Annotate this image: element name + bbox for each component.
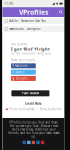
staticText: Share your results bbox=[11, 58, 35, 62]
button[interactable]: Facebook bbox=[22, 141, 26, 144]
staticText: 11:08 bbox=[4, 2, 13, 5]
button[interactable]: PLAY AGAIN bbox=[11, 90, 49, 96]
button[interactable]: LinkedIn bbox=[36, 141, 40, 144]
staticText: I got 10 of 11 right bbox=[11, 46, 50, 51]
staticText: Wanna One - Energetic bbox=[9, 27, 40, 31]
staticText: t bbox=[13, 70, 14, 74]
button[interactable]: f bbox=[11, 63, 36, 68]
button[interactable]: t bbox=[11, 70, 36, 75]
staticText: VProfiles helps you find and share the q… bbox=[8, 121, 59, 138]
button[interactable]: Wanna One - Energetic bbox=[2, 26, 64, 32]
staticText: f bbox=[13, 64, 14, 68]
staticText: VProfiles bbox=[19, 8, 48, 17]
staticText: Credit Note bbox=[25, 102, 42, 105]
staticText: YOU SCORED bbox=[11, 42, 27, 46]
staticText: PLAY AGAIN bbox=[22, 92, 39, 95]
staticText: on the Guess the Song quiz bbox=[11, 52, 51, 55]
staticText: Photo by Unsplash • Song by Spotify bbox=[9, 107, 61, 111]
button[interactable]: g bbox=[11, 76, 36, 81]
staticText: Adele - Someone Like You bbox=[9, 19, 46, 23]
staticText: Twitter bbox=[15, 70, 24, 74]
button[interactable]: Adele - Someone Like You bbox=[2, 18, 64, 24]
staticText: g bbox=[13, 77, 15, 80]
button[interactable]: Twitter bbox=[27, 141, 30, 144]
button[interactable]: Search bbox=[57, 7, 64, 17]
staticText: Facebook bbox=[15, 64, 27, 68]
staticText: Google+ bbox=[16, 77, 29, 80]
